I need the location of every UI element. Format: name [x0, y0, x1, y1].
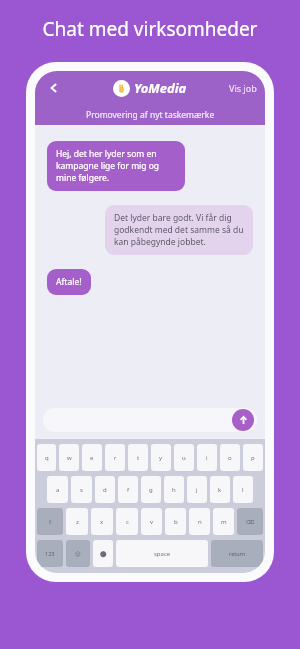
button[interactable]: ⌫	[237, 508, 263, 535]
button[interactable]: q	[37, 444, 56, 471]
staticText: u	[182, 454, 186, 462]
button[interactable]: return	[211, 540, 263, 567]
button[interactable]: f	[118, 476, 138, 503]
button[interactable]: z	[66, 508, 88, 535]
staticText: r	[114, 454, 117, 462]
staticText: n	[198, 518, 202, 526]
button[interactable]: o	[220, 444, 240, 471]
button[interactable]: k	[210, 476, 230, 503]
staticText: Promovering af nyt taskemærke	[86, 109, 215, 121]
button[interactable]: m	[213, 508, 234, 535]
staticText: p	[251, 454, 255, 462]
button[interactable]: e	[82, 444, 102, 471]
button[interactable]: n	[189, 508, 210, 535]
staticText: return	[229, 550, 246, 557]
staticText: 123	[45, 550, 55, 557]
button[interactable]: t	[128, 444, 148, 471]
staticText: b	[174, 518, 178, 526]
staticText: s	[80, 486, 83, 494]
button[interactable]: g	[141, 476, 161, 503]
staticText: ⇧	[48, 519, 53, 525]
staticText: e	[90, 454, 94, 462]
staticText: y	[159, 454, 163, 462]
staticText: ⬤	[100, 550, 107, 557]
button[interactable]: x	[91, 508, 113, 535]
staticText: z	[76, 518, 79, 526]
button[interactable]: YoMedia	[113, 79, 187, 97]
button[interactable]: Hej, det her lyder som en kampagne lige …	[47, 141, 185, 191]
button[interactable]: r	[105, 444, 125, 471]
staticText: Vis job	[229, 82, 257, 94]
button[interactable]: Send	[232, 409, 254, 431]
staticText: d	[103, 486, 107, 494]
button[interactable]: v	[141, 508, 162, 535]
button[interactable]	[43, 408, 257, 432]
button[interactable]: ☺	[66, 540, 90, 567]
button[interactable]: c	[116, 508, 138, 535]
button[interactable]: j	[187, 476, 207, 503]
staticText: k	[218, 486, 222, 494]
staticText: v	[150, 518, 154, 526]
staticText: a	[56, 486, 60, 494]
staticText: w	[67, 454, 72, 462]
button[interactable]: b	[165, 508, 186, 535]
staticText: l	[242, 486, 244, 494]
button[interactable]: ⇧	[37, 508, 63, 535]
button[interactable]: Vis job	[229, 82, 257, 94]
button[interactable]: i	[197, 444, 217, 471]
staticText: space	[154, 550, 171, 558]
button[interactable]: ⬤	[93, 540, 113, 567]
button[interactable]: Det lyder bare godt. Vi får dig godkendt…	[105, 205, 253, 255]
button[interactable]: Aftale!	[47, 269, 91, 295]
staticText: m	[221, 518, 227, 526]
button[interactable]: u	[174, 444, 194, 471]
button[interactable]: y	[151, 444, 171, 471]
button[interactable]: 123	[37, 540, 63, 567]
staticText: x	[100, 518, 104, 526]
staticText: q	[45, 454, 49, 462]
staticText: Det lyder bare godt. Vi får dig godkendt…	[114, 212, 244, 248]
button[interactable]: l	[233, 476, 253, 503]
staticText: o	[228, 454, 232, 462]
button[interactable]: s	[71, 476, 92, 503]
button[interactable]: space	[116, 540, 208, 567]
staticText: j	[196, 486, 198, 494]
staticText: ☺	[75, 551, 81, 557]
button[interactable]: Back	[41, 75, 67, 101]
staticText: YoMedia	[134, 79, 187, 97]
staticText: g	[149, 486, 153, 494]
button[interactable]: d	[95, 476, 115, 503]
staticText: f	[127, 486, 130, 494]
staticText: Hej, det her lyder som en kampagne lige …	[56, 148, 176, 184]
button[interactable]: w	[59, 444, 79, 471]
button[interactable]: p	[243, 444, 263, 471]
staticText: c	[126, 518, 129, 526]
button[interactable]: a	[47, 476, 68, 503]
staticText: Chat med virksomheder	[0, 16, 300, 42]
button[interactable]: h	[164, 476, 184, 503]
staticText: t	[137, 454, 140, 462]
staticText: ⌫	[246, 519, 254, 525]
staticText: Aftale!	[56, 276, 82, 288]
staticText: h	[172, 486, 176, 494]
staticText: i	[206, 454, 208, 462]
